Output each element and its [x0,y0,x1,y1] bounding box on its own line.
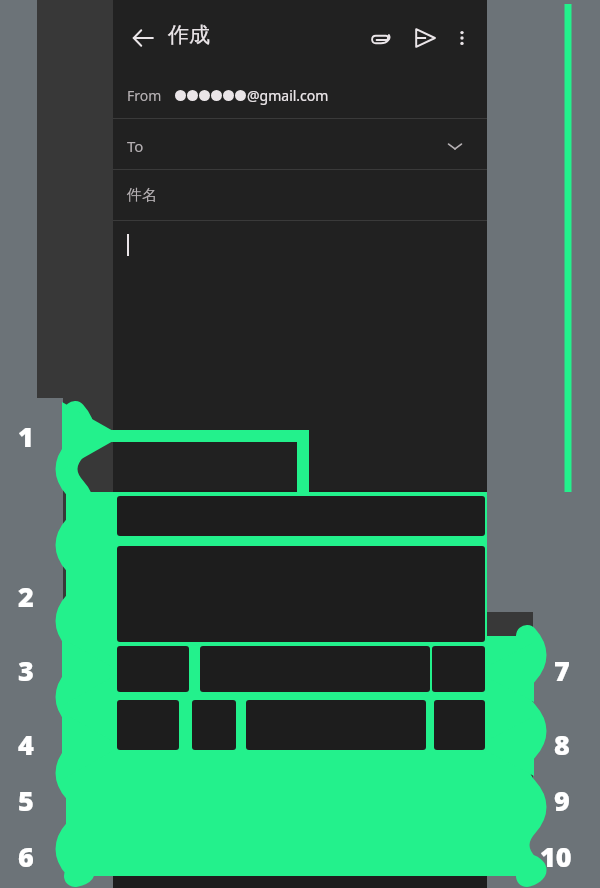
staticText: 9 [554,782,570,819]
button[interactable]: Emoji [211,690,245,736]
staticText: 作成 [168,22,210,48]
button[interactable]: Switch input language [117,690,169,736]
button[interactable]: m [395,642,429,684]
button[interactable]: Backspace [431,642,483,684]
staticText: 5 [18,782,34,819]
staticText: 6 [18,838,34,875]
button[interactable]: Send [407,20,443,56]
button[interactable]: 日本語 [249,690,335,736]
button[interactable]: Back [125,20,161,56]
button[interactable]: x [210,642,244,684]
staticText: 8 [554,726,570,763]
button[interactable]: 件名 [113,170,487,220]
staticText: 7 [554,652,570,689]
button[interactable]: n [358,642,392,684]
staticText: 2 [18,578,34,615]
button[interactable]: b [321,642,355,684]
staticText: 4 [18,726,34,763]
button[interactable]: Shift [117,642,169,684]
button[interactable]: z [173,642,207,684]
staticText: From [127,86,162,105]
button[interactable]: Enter [453,690,505,736]
staticText: z [186,650,195,676]
button[interactable]: Attach file [363,20,399,56]
button[interactable]: To [113,119,487,169]
button[interactable]: c [247,642,281,684]
staticText: 件名 [127,186,157,205]
staticText: 1 [18,418,34,455]
button[interactable]: From [113,70,487,118]
button[interactable]: More options [447,20,477,56]
button[interactable]: Cursor right [415,690,449,736]
button[interactable] [113,221,487,490]
button[interactable]: v [284,642,318,684]
staticText: 、 [183,710,197,728]
button[interactable]: Cursor left [377,690,411,736]
staticText: To [127,136,144,156]
button[interactable]: 、 [173,690,207,736]
button[interactable]: 。 [339,690,373,736]
staticText: @gmail.com [247,86,329,105]
